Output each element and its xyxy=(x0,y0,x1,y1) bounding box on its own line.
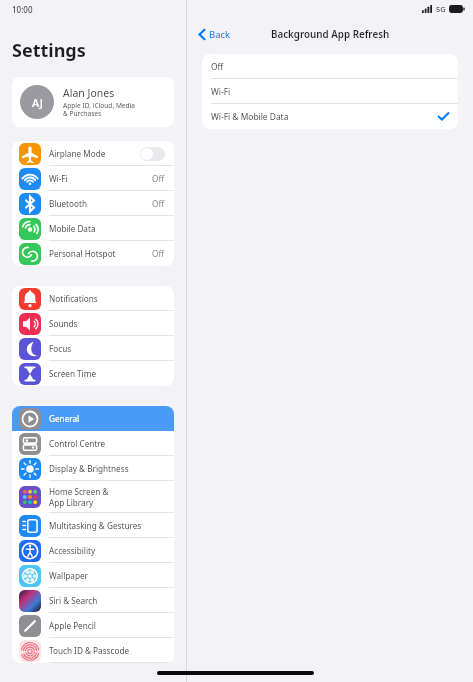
button[interactable]: Mobile Data xyxy=(12,216,174,241)
button[interactable]: Accessibility xyxy=(12,538,174,563)
button[interactable]: Siri & Search xyxy=(12,588,174,613)
button[interactable]: Bluetooth xyxy=(12,191,174,216)
staticText: Notifications xyxy=(49,293,98,304)
button[interactable]: Wi-Fi xyxy=(12,166,174,191)
button[interactable]: Home Screen & xyxy=(12,481,174,513)
button[interactable]: Screen Time xyxy=(12,361,174,386)
staticText: Apple ID, iCloud, Media & Purchases xyxy=(63,101,136,118)
button[interactable]: AJ xyxy=(12,77,174,127)
button[interactable]: General xyxy=(12,406,174,431)
button[interactable]: Touch ID & Passcode xyxy=(12,638,174,663)
staticText: AJ xyxy=(32,95,43,110)
staticText: Home Screen & xyxy=(49,486,109,497)
staticText: Multitasking & Gestures xyxy=(49,520,142,531)
staticText: Accessibility xyxy=(49,545,96,556)
staticText: Off xyxy=(152,248,165,259)
staticText: App Library xyxy=(49,497,94,508)
button[interactable]: Control Centre xyxy=(12,431,174,456)
staticText: Wallpaper xyxy=(49,570,88,581)
button[interactable]: Notifications xyxy=(12,286,174,311)
staticText: Off xyxy=(152,173,165,184)
staticText: 5G xyxy=(436,4,446,14)
staticText: Alan Jones xyxy=(63,86,115,100)
staticText: Apple Pencil xyxy=(49,620,96,631)
staticText: General xyxy=(49,413,80,424)
staticText: Mobile Data xyxy=(49,223,96,234)
staticText: Wi-Fi & Mobile Data xyxy=(211,111,438,122)
staticText: Wi-Fi xyxy=(211,86,449,97)
staticText: Personal Hotspot xyxy=(49,248,116,259)
staticText: Siri & Search xyxy=(49,595,98,606)
staticText: Back xyxy=(209,28,231,41)
staticText: Airplane Mode xyxy=(49,148,106,159)
button[interactable]: Wi-Fi & Mobile Data xyxy=(202,104,458,129)
button[interactable]: Multitasking & Gestures xyxy=(12,513,174,538)
button[interactable]: Back xyxy=(195,25,235,44)
staticText: 10:00 xyxy=(12,4,33,15)
button[interactable]: Off xyxy=(202,54,458,79)
button[interactable]: Wi-Fi xyxy=(202,79,458,104)
staticText: Sounds xyxy=(49,318,78,329)
button[interactable]: Airplane Mode xyxy=(12,141,174,166)
button[interactable]: Display & Brightness xyxy=(12,456,174,481)
button[interactable]: Focus xyxy=(12,336,174,361)
staticText: Focus xyxy=(49,343,72,354)
staticText: Background App Refresh xyxy=(271,28,390,41)
staticText: Wi-Fi xyxy=(49,173,68,184)
staticText: Touch ID & Passcode xyxy=(49,645,130,656)
staticText: Off xyxy=(152,198,165,209)
staticText: Settings xyxy=(12,38,86,63)
button[interactable]: Apple Pencil xyxy=(12,613,174,638)
button[interactable] xyxy=(140,147,165,161)
staticText: Control Centre xyxy=(49,438,106,449)
staticText: Bluetooth xyxy=(49,198,87,209)
button[interactable]: Sounds xyxy=(12,311,174,336)
button[interactable]: Personal Hotspot xyxy=(12,241,174,266)
staticText: Screen Time xyxy=(49,368,97,379)
button[interactable]: Wallpaper xyxy=(12,563,174,588)
staticText: Display & Brightness xyxy=(49,463,129,474)
staticText: Off xyxy=(211,61,449,72)
